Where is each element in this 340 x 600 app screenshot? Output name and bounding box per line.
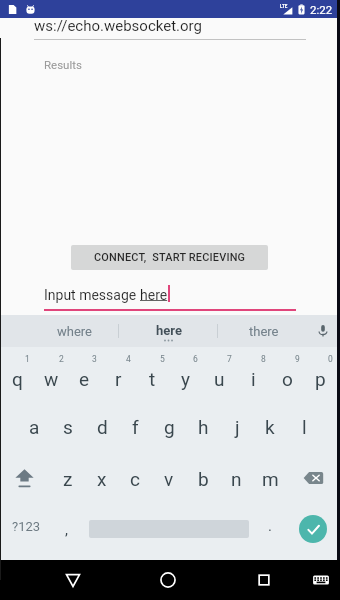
button[interactable]: ws://echo.websocket.org: [34, 17, 306, 40]
staticText: a: [29, 416, 40, 438]
button[interactable]: g: [152, 402, 186, 452]
staticText: y: [181, 368, 190, 390]
button[interactable]: ?123: [4, 501, 48, 551]
staticText: v: [164, 468, 174, 490]
staticText: 9: [295, 354, 300, 364]
button[interactable]: Backspace: [296, 454, 330, 504]
staticText: u: [214, 368, 225, 390]
button[interactable]: ,: [51, 505, 81, 555]
staticText: j: [235, 416, 240, 438]
staticText: d: [97, 416, 108, 438]
button[interactable]: a: [17, 402, 51, 452]
button[interactable]: 0: [303, 349, 337, 399]
staticText: s: [63, 416, 73, 438]
staticText: .: [268, 517, 272, 535]
staticText: f: [132, 416, 139, 438]
staticText: m: [262, 468, 279, 490]
button[interactable]: Input message: [44, 285, 296, 311]
button[interactable]: there: [219, 315, 309, 347]
button[interactable]: here: [120, 315, 217, 347]
staticText: p: [315, 368, 326, 390]
staticText: CONNECT, START RECIEVING: [94, 251, 246, 264]
staticText: 8: [261, 354, 266, 364]
staticText: e: [79, 368, 90, 390]
button[interactable]: Shift: [7, 454, 41, 504]
button[interactable]: j: [220, 402, 254, 452]
button[interactable]: m: [253, 454, 287, 504]
button[interactable]: 5: [135, 349, 169, 399]
staticText: 7: [227, 354, 232, 364]
button[interactable]: 6: [168, 349, 202, 399]
button[interactable]: Voice input: [309, 315, 337, 347]
staticText: 6: [193, 354, 198, 364]
button[interactable]: l: [287, 402, 321, 452]
staticText: 4: [126, 354, 131, 364]
staticText: LTE: [280, 4, 288, 9]
button[interactable]: where: [27, 315, 123, 347]
button[interactable]: Back: [62, 569, 84, 591]
staticText: Results: [44, 58, 82, 71]
staticText: b: [198, 468, 209, 490]
staticText: o: [282, 368, 293, 390]
button[interactable]: z: [51, 454, 85, 504]
staticText: ws://echo.websocket.org: [34, 17, 202, 35]
button[interactable]: v: [152, 454, 186, 504]
staticText: 0: [328, 354, 333, 364]
staticText: ?123: [12, 519, 41, 534]
staticText: z: [63, 468, 73, 490]
button[interactable]: .: [255, 501, 285, 551]
staticText: g: [164, 416, 175, 438]
button[interactable]: k: [253, 402, 287, 452]
button[interactable]: c: [118, 454, 152, 504]
button[interactable]: h: [186, 402, 220, 452]
staticText: 1: [25, 354, 30, 364]
staticText: c: [130, 468, 140, 490]
staticText: 2:22: [310, 3, 333, 16]
button[interactable]: 3: [67, 349, 101, 399]
staticText: w: [44, 368, 59, 390]
staticText: h: [198, 416, 209, 438]
staticText: there: [249, 324, 279, 339]
staticText: r: [115, 368, 122, 390]
staticText: 5: [160, 354, 165, 364]
staticText: q: [12, 368, 23, 390]
button[interactable]: b: [186, 454, 220, 504]
button[interactable]: s: [51, 402, 85, 452]
button[interactable]: 9: [270, 349, 304, 399]
staticText: ,: [65, 521, 68, 539]
staticText: k: [265, 416, 275, 438]
button[interactable]: Change keyboard: [310, 569, 332, 591]
button[interactable]: 4: [101, 349, 135, 399]
staticText: here: [156, 323, 182, 338]
button[interactable]: f: [118, 402, 152, 452]
button[interactable]: 1: [0, 349, 34, 399]
button[interactable]: x: [85, 454, 119, 504]
staticText: Input message: [44, 287, 140, 303]
button[interactable]: d: [85, 402, 119, 452]
button[interactable]: 7: [202, 349, 236, 399]
staticText: x: [97, 468, 107, 490]
staticText: t: [149, 368, 156, 390]
staticText: 2: [59, 354, 64, 364]
button[interactable]: n: [219, 454, 253, 504]
button[interactable]: CONNECT, START RECIEVING: [71, 245, 268, 270]
button[interactable]: Enter: [299, 515, 327, 543]
button[interactable]: Recents: [253, 569, 275, 591]
staticText: i: [251, 368, 256, 390]
staticText: where: [57, 324, 93, 339]
staticText: l: [302, 416, 307, 438]
button[interactable]: 8: [236, 349, 270, 399]
staticText: n: [231, 468, 242, 490]
button[interactable]: 2: [34, 349, 68, 399]
staticText: here: [140, 287, 168, 303]
button[interactable]: Home: [157, 569, 179, 591]
staticText: 3: [92, 354, 97, 364]
